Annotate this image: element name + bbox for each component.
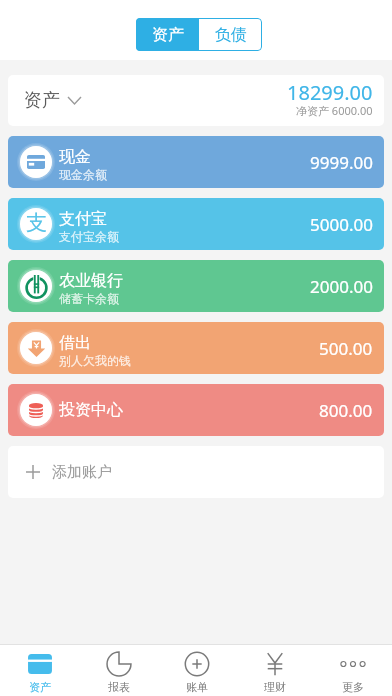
staticText: 9999.00 [310, 151, 373, 174]
staticText: 资产 [29, 680, 51, 694]
button[interactable]: 借出 [8, 322, 384, 374]
staticText: 净资产 6000.00 [296, 103, 373, 118]
button[interactable]: 账单 [158, 645, 236, 696]
staticText: 添加账户 [52, 463, 112, 482]
staticText: 负债 [215, 25, 247, 45]
button[interactable]: 资产 [8, 75, 384, 126]
staticText: 报表 [108, 680, 130, 694]
staticText: 理财 [264, 680, 286, 694]
staticText: 储蓄卡余额 [59, 291, 119, 306]
button[interactable]: 资产 [136, 18, 199, 51]
staticText: 资产 [152, 25, 184, 45]
staticText: 支付宝余额 [59, 229, 119, 244]
staticText: 别人欠我的钱 [59, 353, 131, 368]
staticText: 账单 [186, 680, 208, 694]
button[interactable]: 投资中心 [8, 384, 384, 436]
button[interactable]: 报表 [79, 645, 158, 696]
button[interactable]: 现金 [8, 136, 384, 188]
staticText: 现金余额 [59, 167, 107, 182]
staticText: 现金 [59, 147, 91, 167]
staticText: 支 [26, 210, 47, 236]
staticText: 资产 [24, 89, 60, 112]
staticText: 更多 [342, 680, 364, 694]
staticText: 800.00 [319, 399, 373, 422]
staticText: 18299.00 [287, 79, 373, 106]
button[interactable]: 资产 [0, 645, 79, 696]
staticText: 投资中心 [59, 400, 123, 420]
staticText: 5000.00 [310, 213, 373, 236]
staticText: 500.00 [319, 337, 373, 360]
staticText: 2000.00 [310, 275, 373, 298]
button[interactable]: 负债 [199, 18, 262, 51]
staticText: 借出 [59, 333, 91, 353]
staticText: 农业银行 [59, 271, 123, 291]
button[interactable]: 添加账户 [8, 446, 384, 498]
button[interactable]: 更多 [314, 645, 392, 696]
button[interactable]: 支 [8, 198, 384, 250]
staticText: 支付宝 [59, 209, 107, 229]
button[interactable]: 理财 [236, 645, 314, 696]
button[interactable]: 农业银行 [8, 260, 384, 312]
